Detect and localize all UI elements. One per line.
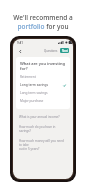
staticText: Next <box>62 49 68 53</box>
button[interactable]: Back <box>17 48 23 54</box>
button[interactable]: What is your annual income? <box>16 112 70 122</box>
staticText: What are you investing for? <box>20 61 66 71</box>
staticText: How much money will you need to take out… <box>19 139 67 151</box>
staticText: Retirement <box>20 75 36 79</box>
button[interactable]: Next <box>60 48 69 53</box>
staticText: Long term savings <box>20 83 49 87</box>
staticText: What is your annual income? <box>19 115 60 119</box>
button[interactable]: How much money will you need to take out… <box>16 136 70 154</box>
staticText: Questions <box>44 49 58 53</box>
staticText: Major purchase <box>20 99 44 103</box>
button[interactable]: Long term savings <box>20 83 66 87</box>
staticText: We'll recommend a portfolio for you <box>13 13 73 31</box>
staticText: Long term savings <box>20 91 48 95</box>
staticText: 9:41 <box>17 41 23 45</box>
button[interactable]: Long term savings <box>20 91 66 95</box>
staticText: How much do you have in savings? <box>19 125 67 133</box>
button[interactable]: How much do you have in savings? <box>16 122 70 136</box>
button[interactable]: Major purchase <box>20 99 66 103</box>
